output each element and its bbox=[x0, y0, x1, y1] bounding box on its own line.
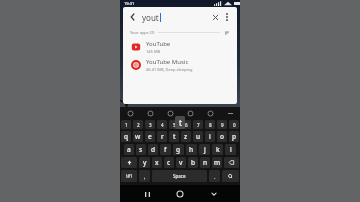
button[interactable]: Space bbox=[152, 170, 207, 182]
button[interactable]: z bbox=[181, 131, 191, 142]
button[interactable]: 4 bbox=[157, 120, 167, 129]
button[interactable]: h bbox=[186, 144, 197, 155]
staticText: g bbox=[176, 145, 181, 154]
staticText: 7 bbox=[197, 122, 200, 128]
staticText: o bbox=[220, 132, 224, 141]
button[interactable]: l bbox=[225, 144, 236, 155]
button[interactable]: More options bbox=[222, 12, 232, 22]
staticText: 6 bbox=[185, 122, 188, 128]
staticText: n bbox=[203, 158, 208, 167]
staticText: Space bbox=[173, 173, 186, 179]
button[interactable]: 8 bbox=[205, 120, 215, 129]
button[interactable]: y bbox=[139, 157, 150, 168]
button[interactable]: . bbox=[209, 170, 220, 182]
button[interactable]: x bbox=[152, 157, 162, 168]
staticText: 3 bbox=[149, 122, 152, 128]
staticText: YouTube bbox=[146, 40, 171, 48]
staticText: x bbox=[155, 158, 159, 167]
button[interactable]: Back bbox=[207, 187, 221, 201]
button[interactable]: Home bbox=[173, 187, 187, 201]
button[interactable]: s bbox=[136, 144, 146, 155]
staticText: k bbox=[216, 145, 220, 154]
button[interactable]: 7 bbox=[193, 120, 203, 129]
button[interactable]: j bbox=[199, 144, 210, 155]
staticText: p bbox=[232, 132, 237, 141]
button[interactable]: m bbox=[212, 157, 222, 168]
staticText: 4 bbox=[161, 122, 164, 128]
button[interactable]: GIF bbox=[166, 109, 174, 117]
staticText: y bbox=[143, 158, 147, 167]
button[interactable]: t bbox=[169, 131, 179, 142]
staticText: m bbox=[214, 158, 221, 167]
button[interactable]: w bbox=[133, 131, 143, 142]
button[interactable]: Emoji bbox=[146, 109, 154, 117]
staticText: v bbox=[179, 158, 183, 167]
button[interactable]: i bbox=[205, 131, 215, 142]
button[interactable]: YouTube bbox=[123, 38, 237, 56]
button[interactable]: Stickers bbox=[126, 109, 134, 117]
staticText: l bbox=[230, 145, 232, 154]
button[interactable]: Sort bbox=[223, 29, 230, 36]
staticText: j bbox=[204, 145, 206, 154]
staticText: 5 bbox=[173, 122, 176, 128]
staticText: q bbox=[124, 132, 129, 141]
button[interactable]: c bbox=[164, 157, 174, 168]
staticText: 46.41 MB, Deep sleeping bbox=[146, 67, 193, 72]
button[interactable]: Search bbox=[222, 170, 239, 182]
button[interactable]: Recents bbox=[140, 187, 154, 201]
staticText: yout bbox=[142, 12, 159, 23]
button[interactable]: Collapse keyboard bbox=[226, 109, 234, 117]
button[interactable]: n bbox=[200, 157, 210, 168]
button[interactable]: Back bbox=[123, 7, 237, 27]
button[interactable]: 0 bbox=[229, 120, 239, 129]
button[interactable]: Voice input bbox=[206, 109, 214, 117]
button[interactable]: 6 bbox=[181, 120, 191, 129]
staticText: z bbox=[184, 132, 188, 141]
button[interactable]: , bbox=[139, 170, 150, 182]
button[interactable]: p bbox=[229, 131, 239, 142]
button[interactable]: 2 bbox=[133, 120, 143, 129]
staticText: 1 bbox=[125, 122, 128, 128]
staticText: e bbox=[148, 132, 152, 141]
button[interactable]: b bbox=[188, 157, 198, 168]
button[interactable]: k bbox=[212, 144, 223, 155]
button[interactable]: 5 bbox=[169, 120, 179, 129]
button[interactable]: u bbox=[193, 131, 203, 142]
button[interactable]: f bbox=[160, 144, 171, 155]
staticText: 19:31 bbox=[124, 1, 135, 6]
staticText: !#1 bbox=[126, 173, 133, 179]
button[interactable]: !#1 bbox=[121, 170, 137, 182]
button[interactable]: 3 bbox=[145, 120, 155, 129]
staticText: i bbox=[209, 132, 211, 141]
button[interactable]: q bbox=[121, 131, 131, 142]
button[interactable]: o bbox=[217, 131, 227, 142]
staticText: YouTube Music bbox=[146, 58, 189, 66]
button[interactable]: e bbox=[145, 131, 155, 142]
staticText: 145 MB bbox=[146, 49, 161, 54]
button[interactable]: YouTube Music bbox=[123, 56, 237, 74]
staticText: s bbox=[139, 145, 143, 154]
staticText: b bbox=[191, 158, 196, 167]
button[interactable]: 9 bbox=[217, 120, 227, 129]
staticText: c bbox=[167, 158, 171, 167]
button[interactable]: r bbox=[157, 131, 167, 142]
button[interactable]: a bbox=[124, 144, 134, 155]
button[interactable]: 1 bbox=[121, 120, 131, 129]
staticText: u bbox=[196, 132, 201, 141]
button[interactable]: g bbox=[173, 144, 184, 155]
staticText: 9 bbox=[221, 122, 224, 128]
button[interactable]: Backspace bbox=[224, 157, 239, 168]
button[interactable]: Shift bbox=[121, 157, 137, 168]
staticText: d bbox=[151, 145, 156, 154]
staticText: 2 bbox=[137, 122, 140, 128]
staticText: Your apps (2) bbox=[130, 30, 155, 35]
button[interactable]: Clear bbox=[210, 12, 220, 22]
button[interactable]: Search bbox=[186, 109, 194, 117]
staticText: a bbox=[127, 145, 131, 154]
button[interactable]: d bbox=[148, 144, 158, 155]
staticText: t bbox=[173, 132, 176, 141]
button[interactable]: Back bbox=[128, 12, 138, 22]
button[interactable]: v bbox=[176, 157, 186, 168]
staticText: w bbox=[135, 132, 141, 141]
staticText: t bbox=[179, 117, 182, 128]
